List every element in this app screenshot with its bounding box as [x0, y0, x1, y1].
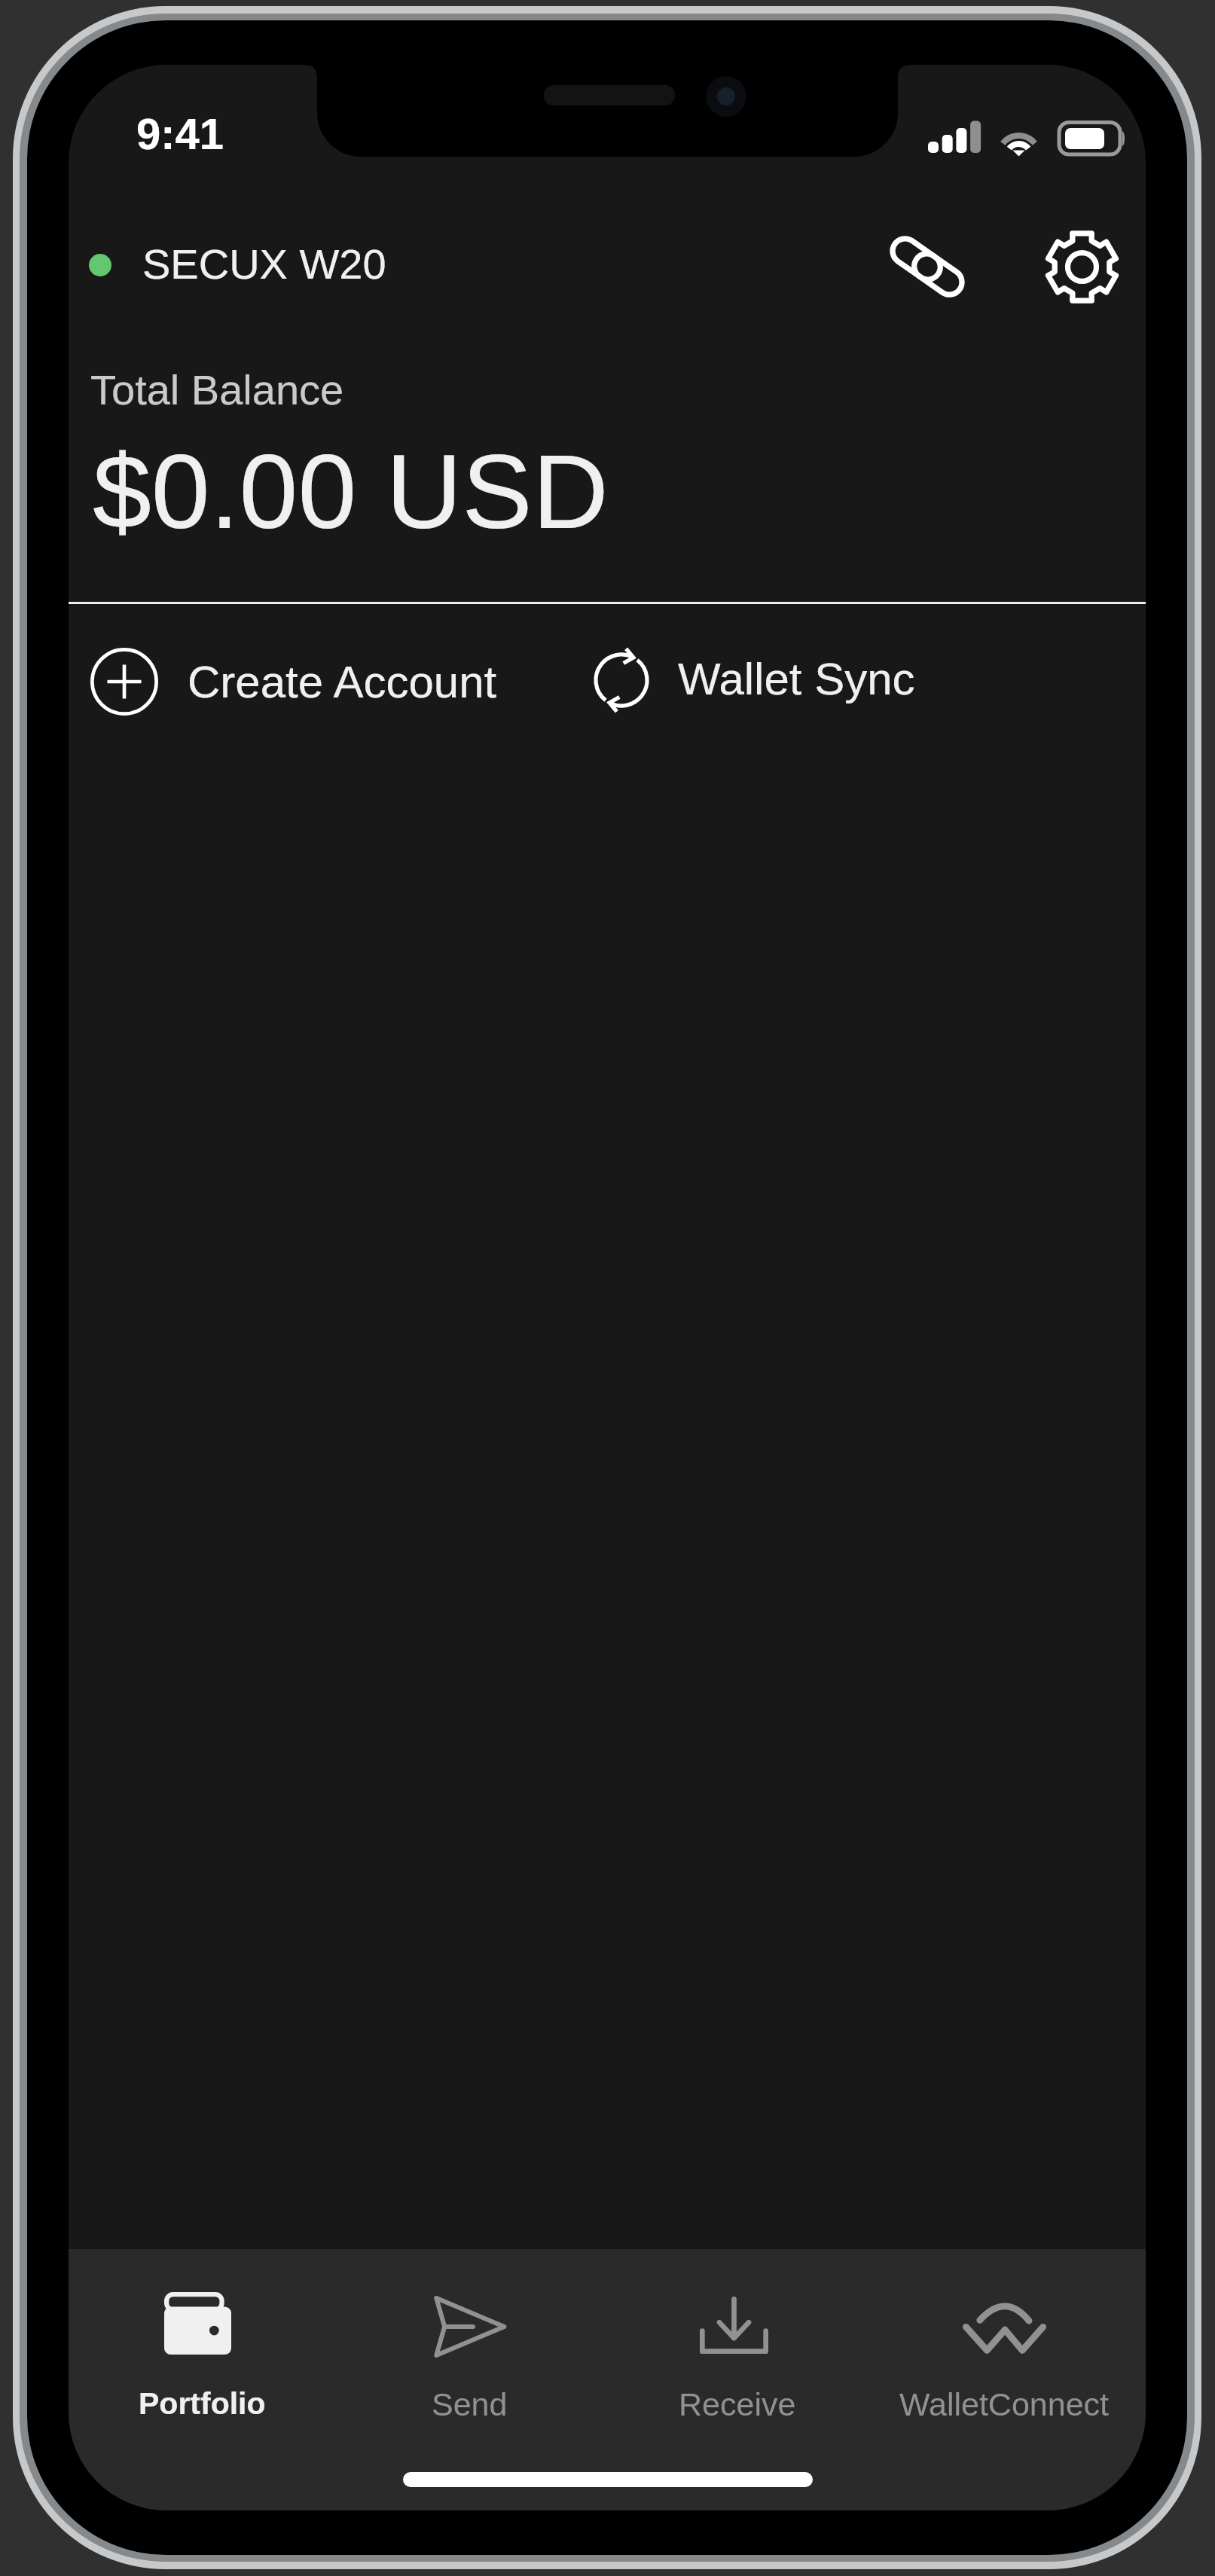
button[interactable]: Receive [603, 2249, 871, 2437]
button[interactable]: Link [881, 220, 974, 313]
staticText: Portfolio [139, 2386, 266, 2421]
button[interactable]: Wallet Sync [588, 634, 915, 726]
staticText: Send [432, 2386, 508, 2422]
staticText: $0.00 USD [93, 432, 609, 550]
staticText: Create Account [188, 657, 497, 707]
staticText: 9:41 [136, 109, 224, 158]
staticText: Wallet Sync [678, 654, 915, 704]
button[interactable]: WalletConnect [871, 2249, 1138, 2437]
button[interactable]: Create Account [90, 636, 497, 728]
staticText: Receive [679, 2386, 796, 2422]
button[interactable]: Portfolio [69, 2249, 336, 2437]
staticText: Total Balance [90, 366, 344, 414]
button[interactable]: Send [336, 2249, 603, 2437]
staticText: SECUX W20 [142, 240, 386, 288]
staticText: WalletConnect [899, 2386, 1110, 2422]
button[interactable]: Settings [1035, 220, 1128, 313]
